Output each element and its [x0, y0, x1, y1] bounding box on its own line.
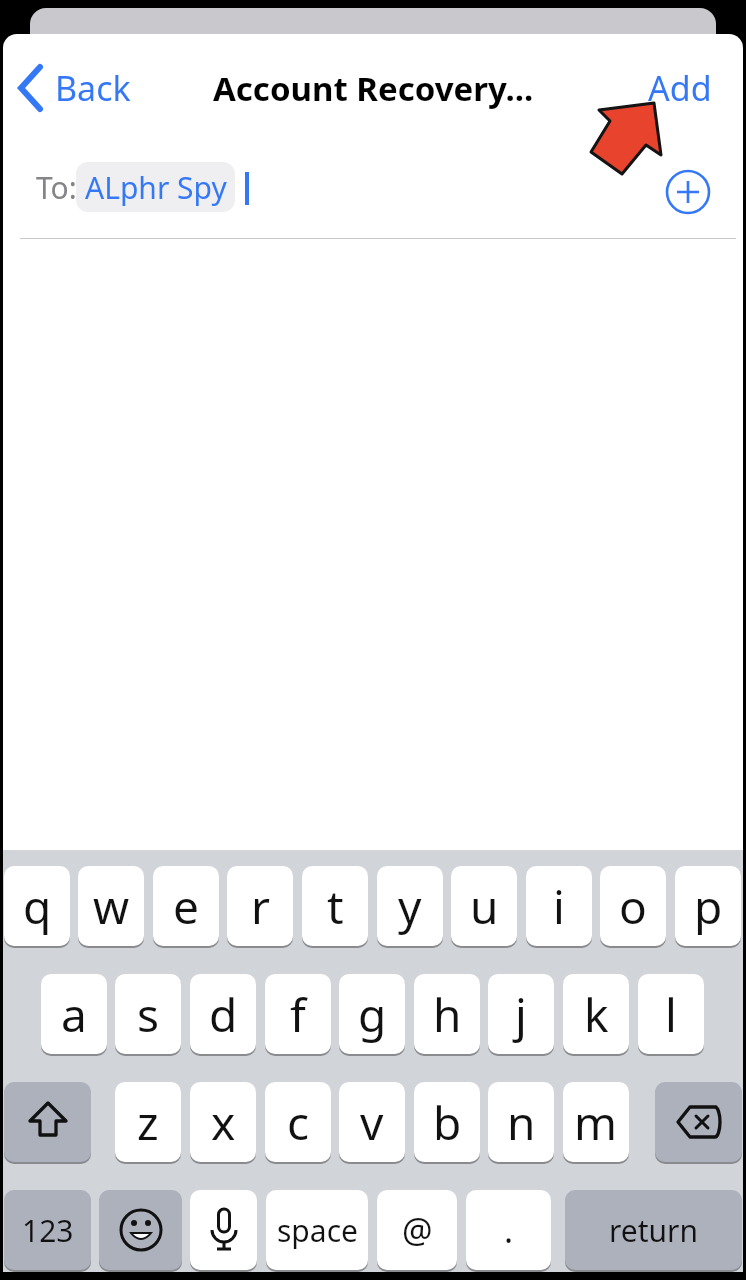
- button[interactable]: z: [115, 1082, 181, 1162]
- button[interactable]: space: [266, 1190, 368, 1270]
- staticText: z: [137, 1091, 159, 1154]
- button[interactable]: m: [563, 1082, 629, 1162]
- button[interactable]: d: [190, 974, 256, 1054]
- button[interactable]: s: [115, 974, 181, 1054]
- staticText: w: [93, 875, 130, 938]
- staticText: m: [574, 1091, 618, 1154]
- button[interactable]: u: [451, 866, 517, 946]
- staticText: space: [277, 1210, 358, 1251]
- button[interactable]: q: [4, 866, 70, 946]
- button[interactable]: p: [675, 866, 741, 946]
- staticText: y: [398, 875, 422, 938]
- button[interactable]: w: [78, 866, 144, 946]
- staticText: p: [694, 875, 723, 938]
- staticText: n: [507, 1091, 536, 1154]
- staticText: u: [470, 875, 499, 938]
- button[interactable]: [4, 1082, 91, 1162]
- button[interactable]: o: [600, 866, 666, 946]
- button[interactable]: [655, 1082, 742, 1162]
- staticText: ALphr Spy: [85, 167, 227, 208]
- staticText: To:: [36, 167, 77, 208]
- staticText: f: [290, 983, 306, 1046]
- button[interactable]: Add: [617, 60, 712, 116]
- staticText: @: [402, 1207, 433, 1253]
- button[interactable]: k: [563, 974, 629, 1054]
- staticText: i: [553, 875, 565, 938]
- staticText: c: [287, 1091, 310, 1154]
- staticText: return: [609, 1210, 699, 1251]
- staticText: k: [584, 983, 609, 1046]
- staticText: o: [619, 875, 647, 938]
- button[interactable]: n: [488, 1082, 554, 1162]
- button[interactable]: e: [153, 866, 219, 946]
- button[interactable]: v: [339, 1082, 405, 1162]
- staticText: b: [433, 1091, 462, 1154]
- button[interactable]: y: [377, 866, 443, 946]
- button[interactable]: ALphr Spy: [76, 162, 235, 212]
- button[interactable]: 123: [4, 1190, 91, 1270]
- staticText: Account Recovery...: [213, 66, 534, 111]
- staticText: .: [504, 1207, 514, 1253]
- staticText: h: [433, 983, 462, 1046]
- button[interactable]: r: [227, 866, 293, 946]
- button[interactable]: f: [265, 974, 331, 1054]
- button[interactable]: .: [466, 1190, 551, 1270]
- staticText: s: [137, 983, 160, 1046]
- staticText: Back: [55, 65, 131, 111]
- button[interactable]: x: [190, 1082, 256, 1162]
- staticText: g: [358, 983, 387, 1046]
- staticText: 123: [22, 1210, 74, 1251]
- button[interactable]: b: [414, 1082, 480, 1162]
- button[interactable]: a: [41, 974, 107, 1054]
- staticText: v: [360, 1091, 384, 1154]
- staticText: x: [211, 1091, 236, 1154]
- button[interactable]: [665, 169, 711, 215]
- button[interactable]: t: [302, 866, 368, 946]
- staticText: t: [327, 875, 344, 938]
- button[interactable]: l: [638, 974, 704, 1054]
- staticText: a: [61, 983, 87, 1046]
- button[interactable]: c: [265, 1082, 331, 1162]
- button[interactable]: return: [565, 1190, 742, 1270]
- staticText: Add: [648, 65, 712, 111]
- button[interactable]: g: [339, 974, 405, 1054]
- staticText: j: [515, 983, 527, 1046]
- button[interactable]: j: [488, 974, 554, 1054]
- button[interactable]: Back: [11, 60, 141, 116]
- staticText: e: [173, 875, 199, 938]
- button[interactable]: h: [414, 974, 480, 1054]
- staticText: r: [251, 875, 270, 938]
- button[interactable]: @: [377, 1190, 457, 1270]
- button[interactable]: i: [526, 866, 592, 946]
- button[interactable]: [190, 1190, 257, 1270]
- staticText: l: [665, 983, 677, 1046]
- button[interactable]: [99, 1190, 182, 1270]
- staticText: d: [209, 983, 238, 1046]
- staticText: q: [23, 875, 52, 938]
